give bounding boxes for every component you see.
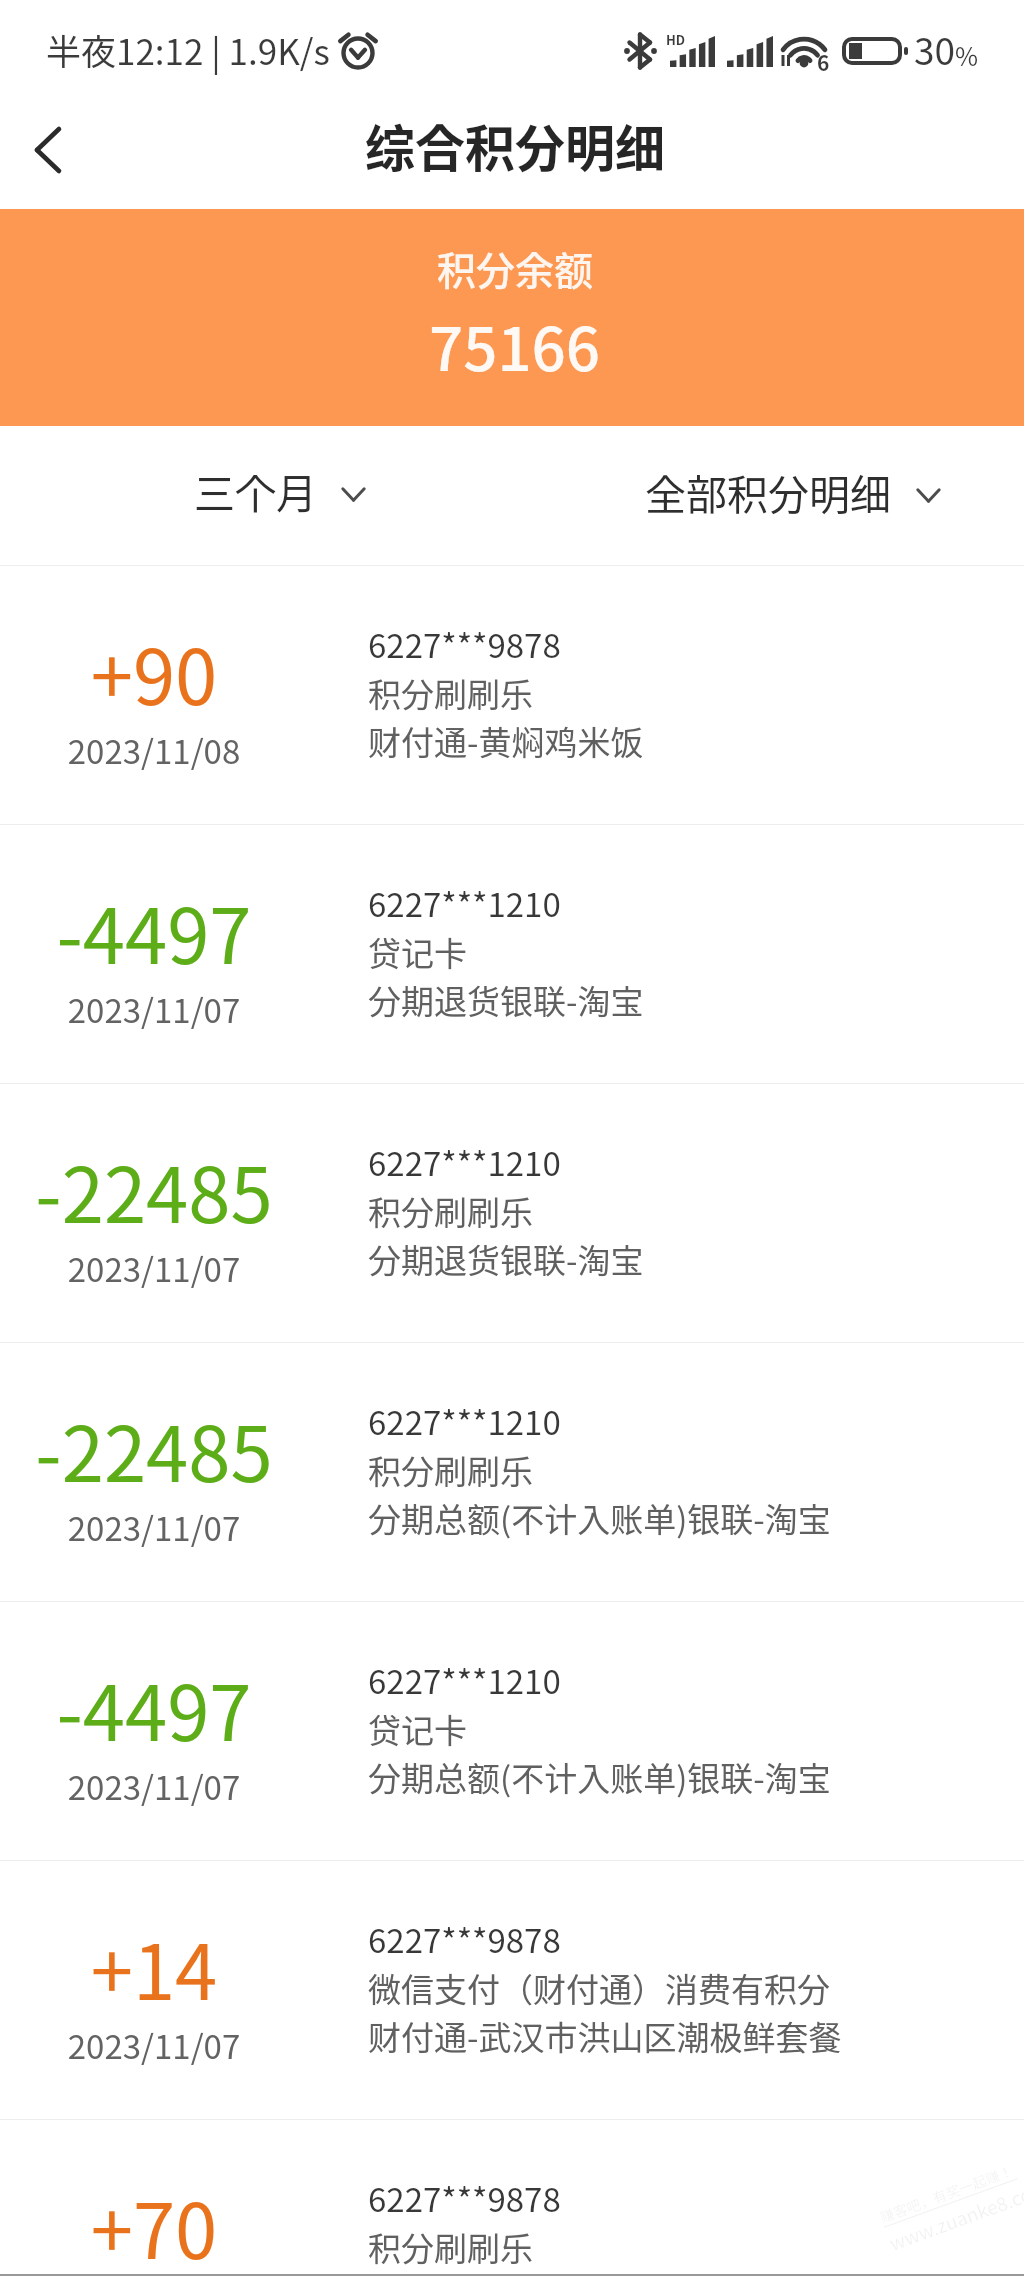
staticText: 6227***1210 — [368, 879, 561, 927]
staticText: 全部积分明细 — [645, 462, 891, 521]
staticText: 2023/11/07 — [4, 1762, 304, 1810]
staticText: % — [955, 37, 979, 73]
staticText: -4497 — [4, 1653, 304, 1763]
staticText: 分期总额(不计入账单)银联-淘宝 — [368, 1494, 831, 1542]
staticText: 30 — [914, 22, 956, 76]
staticText: 6227***9878 — [368, 1915, 561, 1963]
staticText: 积分刷刷乐 — [368, 1446, 533, 1494]
staticText: 财付通-武汉市洪山区潮极鲜套餐 — [368, 2271, 842, 2276]
staticText: 半夜12:12 | 1.9K/s — [46, 24, 330, 75]
staticText: 三个月 — [194, 461, 317, 520]
button[interactable]: +70 — [0, 2120, 1024, 2276]
staticText: 2023/11/07 — [4, 1244, 304, 1292]
staticText: 分期总额(不计入账单)银联-淘宝 — [368, 1753, 831, 1801]
staticText: 6227***1210 — [368, 1138, 561, 1186]
staticText: +70 — [4, 2171, 304, 2276]
staticText: 2023/11/07 — [4, 1503, 304, 1551]
staticText: 6227***1210 — [368, 1397, 561, 1445]
button[interactable]: -4497 — [0, 1602, 1024, 1860]
staticText: 贷记卡 — [368, 928, 467, 976]
button[interactable]: +90 — [0, 566, 1024, 824]
button[interactable]: -22485 — [0, 1084, 1024, 1342]
staticText: 6227***9878 — [368, 2174, 561, 2222]
staticText: 分期退货银联-淘宝 — [368, 976, 644, 1024]
staticText: 6227***9878 — [368, 620, 561, 668]
staticText: 积分余额 — [437, 240, 594, 296]
staticText: 微信支付（财付通）消费有积分 — [368, 1964, 830, 2012]
staticText: -22485 — [4, 1135, 304, 1245]
staticText: 6 — [817, 47, 830, 77]
staticText: 2023/11/07 — [4, 2021, 304, 2069]
staticText: -4497 — [4, 876, 304, 986]
staticText: 2023/11/07 — [4, 985, 304, 1033]
button[interactable]: -4497 — [0, 825, 1024, 1083]
staticText: 财付通-黄焖鸡米饭 — [368, 717, 644, 765]
button[interactable]: Back — [6, 108, 90, 192]
staticText: +14 — [4, 1912, 304, 2022]
staticText: 综合积分明细 — [365, 109, 665, 181]
staticText: 2023/11/08 — [4, 726, 304, 774]
button[interactable]: 全部积分明细 — [630, 438, 955, 548]
button[interactable]: 三个月 — [183, 437, 383, 547]
staticText: 积分刷刷乐 — [368, 2223, 533, 2271]
staticText: +90 — [4, 617, 304, 727]
staticText: 6227***1210 — [368, 1656, 561, 1704]
staticText: HD — [666, 30, 686, 49]
staticText: -22485 — [4, 1394, 304, 1504]
staticText: 贷记卡 — [368, 1705, 467, 1753]
button[interactable]: +14 — [0, 1861, 1024, 2119]
button[interactable]: -22485 — [0, 1343, 1024, 1601]
staticText: 积分刷刷乐 — [368, 1187, 533, 1235]
staticText: 财付通-武汉市洪山区潮极鲜套餐 — [368, 2012, 842, 2060]
staticText: 分期退货银联-淘宝 — [368, 1235, 644, 1283]
staticText: 75166 — [429, 301, 600, 388]
staticText: 积分刷刷乐 — [368, 669, 533, 717]
